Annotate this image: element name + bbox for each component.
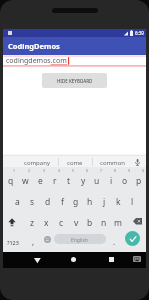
- staticText: 3: [43, 168, 46, 173]
- staticText: codingdemos.com: [6, 56, 67, 66]
- staticText: e: [38, 175, 43, 187]
- staticText: l: [131, 196, 134, 208]
- staticText: 0: [142, 168, 145, 173]
- button[interactable]: 8: [104, 167, 118, 188]
- button[interactable]: [3, 209, 24, 230]
- staticText: HIDE KEYBOARD: [57, 78, 93, 84]
- staticText: q: [8, 175, 14, 187]
- staticText: z: [30, 217, 34, 229]
- button[interactable]: [125, 231, 140, 246]
- staticText: f: [61, 196, 64, 208]
- button[interactable]: j: [97, 188, 111, 209]
- button[interactable]: 4: [48, 167, 62, 188]
- button[interactable]: z: [24, 209, 39, 230]
- staticText: 6:39: [135, 30, 144, 36]
- button[interactable]: k: [111, 188, 125, 209]
- staticText: o: [122, 175, 128, 187]
- button[interactable]: ?123: [3, 230, 22, 252]
- staticText: 8: [114, 168, 117, 173]
- button[interactable]: d: [40, 188, 55, 209]
- button[interactable]: [30, 253, 44, 267]
- button[interactable]: g: [69, 188, 83, 209]
- button[interactable]: [44, 236, 51, 243]
- staticText: y: [81, 175, 86, 187]
- staticText: n: [101, 217, 107, 229]
- staticText: 7: [100, 168, 103, 173]
- staticText: h: [87, 196, 93, 208]
- staticText: x: [44, 217, 49, 229]
- staticText: b: [87, 217, 93, 229]
- button[interactable]: [125, 209, 146, 230]
- staticText: w: [22, 175, 29, 187]
- button[interactable]: x: [39, 209, 54, 230]
- staticText: t: [67, 175, 71, 187]
- staticText: c: [59, 217, 64, 229]
- button[interactable]: 7: [90, 167, 104, 188]
- staticText: 9: [128, 168, 131, 173]
- button[interactable]: 1: [3, 167, 18, 188]
- staticText: English: [71, 237, 89, 244]
- staticText: i: [110, 175, 113, 187]
- button[interactable]: 6: [76, 167, 90, 188]
- button[interactable]: common: [95, 156, 131, 168]
- button[interactable]: company: [19, 156, 55, 168]
- staticText: 2: [28, 168, 31, 173]
- staticText: m: [114, 217, 122, 229]
- button[interactable]: [66, 252, 80, 266]
- staticText: r: [53, 175, 57, 187]
- button[interactable]: l: [125, 188, 139, 209]
- staticText: 1: [13, 168, 16, 173]
- staticText: v: [74, 217, 79, 229]
- button[interactable]: s: [25, 188, 40, 209]
- staticText: s: [30, 196, 35, 208]
- staticText: company: [24, 159, 50, 167]
- staticText: p: [136, 175, 142, 187]
- button[interactable]: .: [104, 230, 124, 252]
- button[interactable]: c: [54, 209, 69, 230]
- button[interactable]: h: [83, 188, 97, 209]
- button[interactable]: b: [83, 209, 97, 230]
- button[interactable]: HIDE KEYBOARD: [42, 73, 107, 88]
- button[interactable]: 2: [18, 167, 33, 188]
- staticText: d: [45, 196, 51, 208]
- staticText: j: [103, 196, 106, 208]
- button[interactable]: 9: [118, 167, 132, 188]
- staticText: k: [116, 196, 121, 208]
- button[interactable]: v: [69, 209, 83, 230]
- staticText: 4: [58, 168, 61, 173]
- button[interactable]: n: [97, 209, 111, 230]
- button[interactable]: 3: [33, 167, 48, 188]
- staticText: ,: [32, 236, 35, 247]
- button[interactable]: m: [111, 209, 125, 230]
- staticText: CodingDemos: [8, 41, 60, 51]
- button[interactable]: [104, 252, 118, 266]
- button[interactable]: [129, 252, 145, 266]
- button[interactable]: 0: [132, 167, 146, 188]
- button[interactable]: ,: [22, 230, 44, 252]
- button[interactable]: f: [55, 188, 69, 209]
- staticText: common: [100, 159, 126, 167]
- button[interactable]: codingdemos.com: [3, 55, 146, 67]
- button[interactable]: come: [60, 156, 90, 168]
- staticText: u: [94, 175, 100, 187]
- button[interactable]: 5: [62, 167, 76, 188]
- staticText: ?123: [7, 239, 19, 246]
- button[interactable]: [131, 156, 144, 168]
- staticText: a: [15, 196, 20, 208]
- button[interactable]: a: [10, 188, 25, 209]
- button[interactable]: English: [54, 234, 106, 244]
- staticText: 5: [72, 168, 75, 173]
- staticText: .: [113, 236, 116, 247]
- staticText: 6: [86, 168, 89, 173]
- staticText: come: [67, 159, 83, 167]
- staticText: g: [73, 196, 79, 208]
